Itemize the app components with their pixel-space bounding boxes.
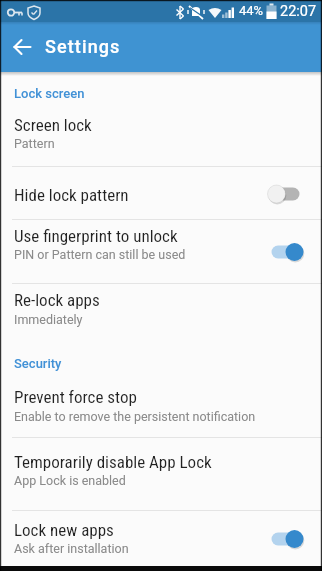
staticText: Screen lock [14, 115, 92, 135]
staticText: 44% [239, 3, 264, 18]
staticText: 22:07 [280, 3, 317, 20]
staticText: App Lock is enabled [14, 473, 126, 488]
staticText: Prevent force stop [14, 387, 137, 407]
staticText: Enable to remove the persistent notifica… [14, 409, 256, 424]
staticText: Lock screen [14, 86, 85, 101]
button[interactable] [6, 31, 38, 63]
staticText: Pattern [14, 136, 55, 151]
button[interactable]: Prevent force stop [0, 383, 322, 438]
staticText: Ask after installation [14, 541, 129, 556]
staticText: PIN or Pattern can still be used [14, 247, 186, 262]
staticText: Security [14, 356, 62, 371]
button[interactable]: Hide lock pattern [0, 167, 322, 220]
button[interactable]: Re-lock apps [0, 284, 322, 346]
staticText: Immediately [14, 312, 83, 327]
button[interactable]: Lock new apps [0, 511, 322, 566]
button[interactable]: Use fingerprint to unlock [0, 220, 322, 284]
staticText: Settings [45, 36, 121, 57]
staticText: Temporarily disable App Lock [14, 452, 212, 472]
button[interactable]: Temporarily disable App Lock [0, 438, 322, 511]
staticText: Hide lock pattern [14, 185, 129, 205]
button[interactable]: Screen lock [0, 114, 322, 166]
staticText: Lock new apps [14, 520, 114, 540]
staticText: Re-lock apps [14, 290, 100, 310]
staticText: Use fingerprint to unlock [14, 226, 178, 246]
